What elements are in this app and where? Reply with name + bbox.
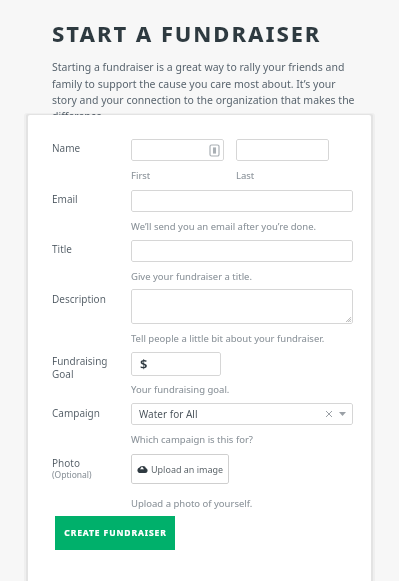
staticText: Your fundraising goal. <box>131 383 230 396</box>
button[interactable]: Water for All <box>131 403 353 425</box>
staticText: Goal <box>52 367 74 381</box>
staticText: CREATE FUNDRAISER <box>64 527 167 539</box>
staticText: Campaign <box>52 406 100 420</box>
staticText: Title <box>52 242 72 256</box>
staticText: (Optional) <box>52 469 92 481</box>
other: Open dropdown <box>339 412 346 416</box>
staticText: Photo <box>52 456 80 470</box>
other: Autofill contact <box>210 145 219 156</box>
staticText: Upload a photo of yourself. <box>131 497 253 510</box>
button[interactable]: CREATE FUNDRAISER <box>55 516 175 550</box>
button[interactable] <box>131 289 353 324</box>
staticText: Fundraising <box>52 354 108 368</box>
other: Clear selection <box>326 411 332 417</box>
button[interactable] <box>236 139 329 161</box>
button[interactable] <box>131 240 353 262</box>
staticText: Email <box>52 192 78 206</box>
staticText: Name <box>52 141 81 155</box>
staticText: Give your fundraiser a title. <box>131 270 253 283</box>
staticText: Description <box>52 292 106 306</box>
button[interactable] <box>131 190 353 212</box>
staticText: Water for All <box>139 407 198 421</box>
staticText: We’ll send you an email after you’re don… <box>131 220 317 233</box>
staticText: START A FUNDRAISER <box>52 18 322 48</box>
staticText: Tell people a little bit about your fund… <box>131 332 325 345</box>
staticText: Which campaign is this for? <box>131 433 253 446</box>
button[interactable]: $ <box>131 352 221 376</box>
staticText: Upload an image <box>151 463 224 475</box>
button[interactable]: Upload an image <box>131 454 229 484</box>
staticText: First <box>131 169 151 182</box>
staticText: $ <box>140 355 148 373</box>
staticText: Starting a fundraiser is a great way to … <box>52 60 359 123</box>
staticText: Last <box>236 169 255 182</box>
button[interactable]: Autofill contact <box>131 139 224 161</box>
